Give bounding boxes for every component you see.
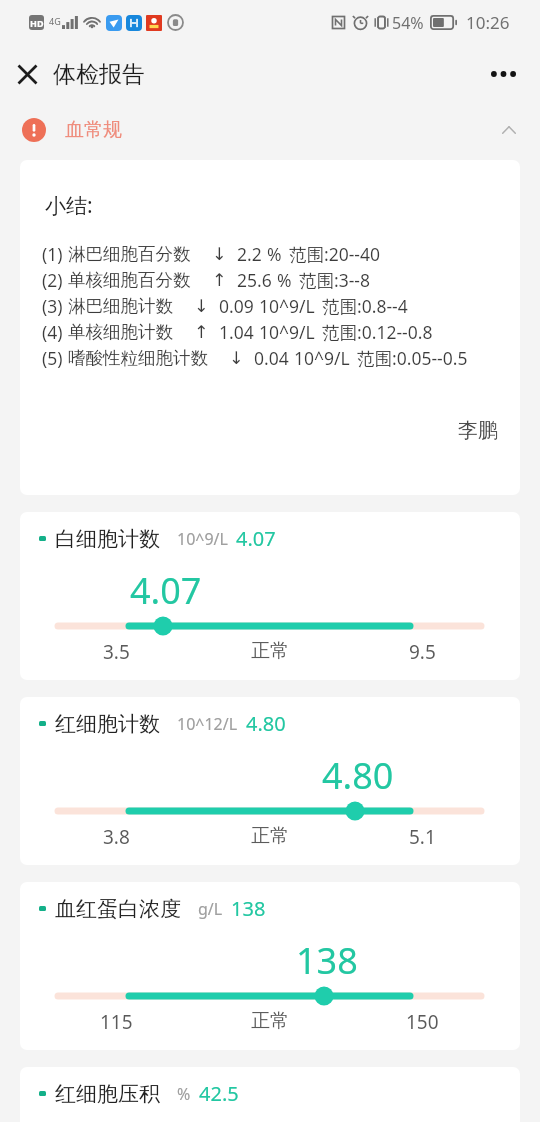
staticText: 0.04 [254,346,289,370]
staticText: 10^12/L [177,713,238,735]
staticText: % [177,1083,191,1105]
staticText: 4.80 [246,710,286,737]
button[interactable]: 血常规 [0,103,540,160]
staticText: 5.1 [409,824,436,850]
staticText: 嗜酸性粒细胞计数 [68,347,208,369]
staticText: 范围:0.05--0.5 [357,346,468,370]
staticText: 单核细胞计数 [68,321,173,343]
staticText: 4G [49,15,61,27]
staticText: 54% [392,12,424,34]
staticText: 淋巴细胞百分数 [68,243,191,265]
staticText: (5) [42,346,63,370]
staticText: 4.07 [130,566,202,615]
staticText: ↑ [194,322,209,342]
staticText: (3) [42,294,63,318]
staticText: HD [30,17,44,29]
staticText: (2) [42,268,63,292]
staticText: 李鹏 [458,418,498,443]
staticText: 1.04 [219,320,254,344]
staticText: 10^9/L [294,346,350,370]
button[interactable]: More options [479,45,528,103]
staticText: 红细胞压积 [55,1081,160,1107]
staticText: 血红蛋白浓度 [55,896,181,922]
staticText: 4.80 [322,751,394,800]
staticText: 4.07 [236,525,276,552]
button[interactable]: 白细胞计数 [20,512,520,680]
staticText: 体检报告 [53,60,145,89]
staticText: 138 [296,936,358,985]
staticText: ↓ [212,244,227,264]
button[interactable]: Close [2,45,53,103]
staticText: (4) [42,320,63,344]
staticText: 10^9/L [259,320,315,344]
staticText: 10^9/L [259,294,315,318]
staticText: 138 [231,895,266,922]
staticText: ↓ [194,296,209,316]
staticText: 115 [100,1009,133,1035]
staticText: ↓ [229,348,244,368]
staticText: 150 [406,1009,439,1035]
staticText: 3.8 [103,824,130,850]
staticText: 血常规 [65,118,122,142]
staticText: 范围:20--40 [289,242,380,266]
staticText: 9.5 [409,639,436,665]
staticText: g/L [198,898,223,920]
staticText: 2.2 [237,242,262,266]
button[interactable]: 血红蛋白浓度 [20,882,520,1050]
staticText: 10:26 [466,11,510,34]
button[interactable]: 红细胞计数 [20,697,520,865]
staticText: 正常 [251,824,289,848]
staticText: 0.09 [219,294,254,318]
staticText: 白细胞计数 [55,526,160,552]
staticText: (1) [42,242,63,266]
staticText: 正常 [251,639,289,663]
staticText: 淋巴细胞计数 [68,295,173,317]
staticText: 范围:3--8 [299,268,370,292]
staticText: 10^9/L [177,528,228,550]
staticText: % [267,242,282,266]
staticText: 范围:0.8--4 [322,294,408,318]
staticText: 单核细胞百分数 [68,269,191,291]
staticText: 红细胞计数 [55,711,160,737]
staticText: 42.5 [199,1080,239,1107]
staticText: % [277,268,292,292]
staticText: 3.5 [103,639,130,665]
staticText: 25.6 [237,268,272,292]
staticText: ↑ [212,270,227,290]
staticText: 正常 [251,1009,289,1033]
staticText: 范围:0.12--0.8 [322,320,433,344]
button[interactable]: 红细胞压积 [20,1067,520,1122]
staticText: 小结: [45,191,93,220]
